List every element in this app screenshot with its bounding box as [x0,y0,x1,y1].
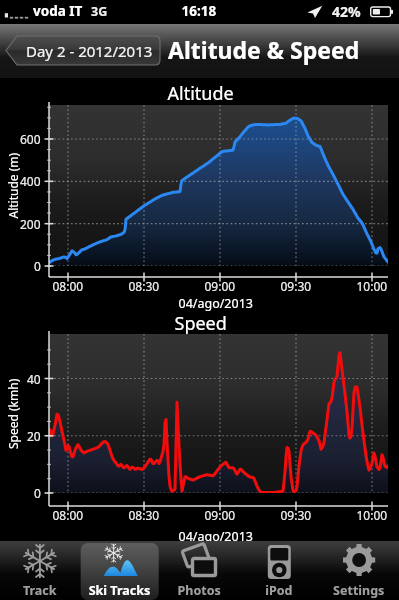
button[interactable]: Settings [319,545,399,600]
button[interactable]: Track [0,545,79,600]
button[interactable] [7,30,159,58]
button[interactable]: iPod [239,545,319,600]
button[interactable]: Photos [159,545,239,600]
button[interactable]: Ski Tracks [79,545,159,600]
